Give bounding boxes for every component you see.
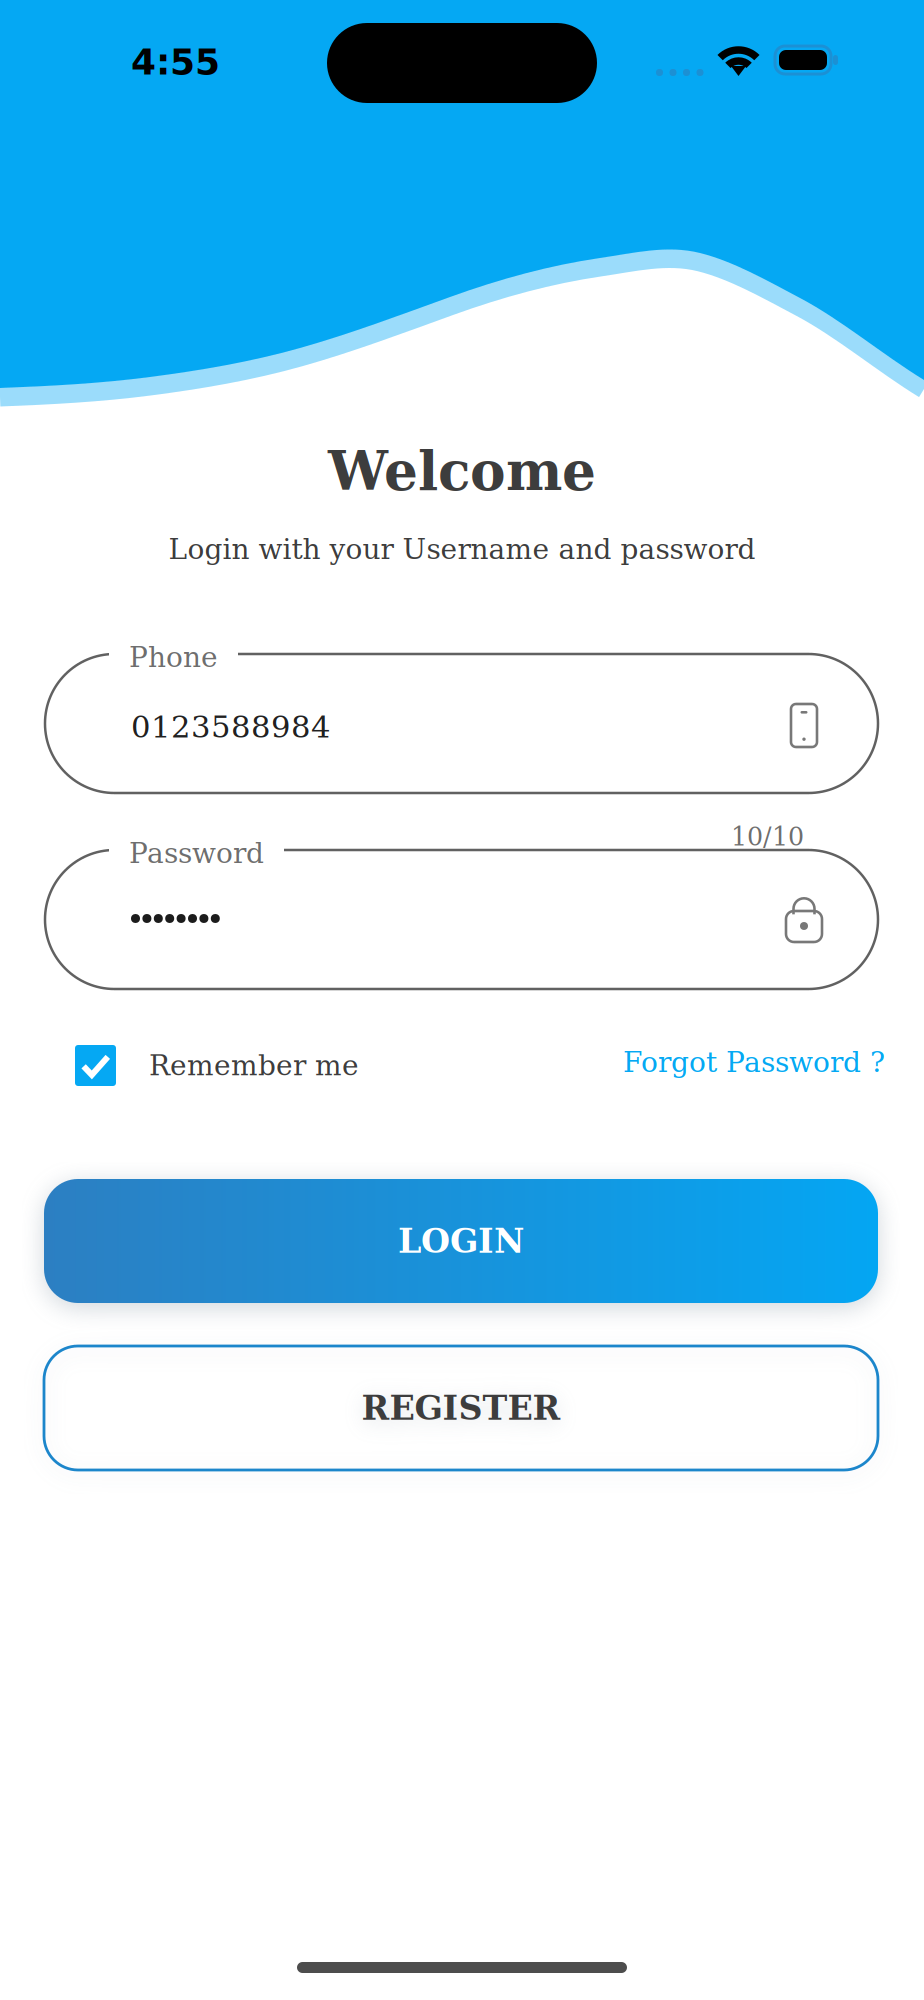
staticText: Remember me [149,1049,359,1082]
staticText: Forgot Password ? [623,1046,885,1079]
button[interactable]: REGISTER [44,1346,878,1470]
staticText: Phone [129,641,218,674]
staticText: 10/10 [731,822,804,851]
staticText: Login with your Username and password [168,533,755,566]
button[interactable]: Remember me [75,1045,359,1086]
staticText: REGISTER [361,1388,560,1428]
button[interactable]: LOGIN [44,1179,878,1303]
staticText: 4:55 [131,41,220,83]
staticText: Welcome [328,440,596,503]
staticText: 0123588984 [131,709,331,745]
staticText: Password [129,837,264,870]
button[interactable]: Forgot Password ? [623,1046,885,1079]
staticText: LOGIN [398,1221,524,1261]
